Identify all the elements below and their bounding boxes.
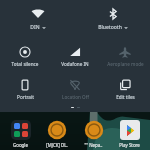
- button[interactable]: Google: [4, 120, 37, 148]
- staticText: Location Off: [62, 94, 89, 100]
- staticText: [MJCK] DL.: [46, 142, 68, 148]
- staticText: Play Store: [119, 142, 140, 148]
- button[interactable]: Edit tiles: [100, 79, 150, 107]
- button[interactable]: Play Store: [113, 120, 146, 148]
- button[interactable]: DIN: [0, 7, 75, 40]
- staticText: Total silence: [11, 61, 39, 67]
- staticText: Vodafone IN: [61, 61, 89, 67]
- button[interactable]: Vodafone IN: [50, 46, 100, 74]
- button[interactable]: "" Nepa..: [77, 120, 110, 148]
- staticText: Edit tiles: [116, 94, 135, 100]
- staticText: DIN: [30, 24, 40, 31]
- button[interactable]: Portrait: [0, 79, 50, 107]
- staticText: Portrait: [17, 94, 34, 100]
- staticText: Aeroplane mode: [107, 61, 144, 67]
- button[interactable]: [MJCK] DL.: [40, 120, 73, 148]
- button[interactable]: Location Off: [50, 79, 100, 107]
- button[interactable]: Total silence: [0, 46, 50, 74]
- staticText: "" Nepa..: [84, 142, 103, 148]
- button[interactable]: Aeroplane mode: [100, 46, 150, 74]
- staticText: Google: [13, 142, 28, 148]
- staticText: Bluetooth: [98, 24, 122, 31]
- button[interactable]: Bluetooth: [75, 7, 150, 40]
